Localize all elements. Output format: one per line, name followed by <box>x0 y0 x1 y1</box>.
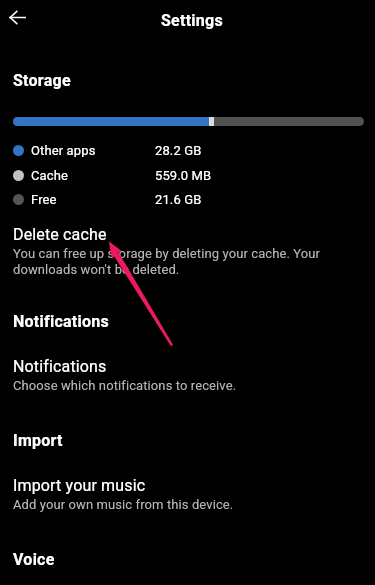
staticText: Cache <box>31 168 68 182</box>
staticText: Import <box>13 431 63 450</box>
staticText: 21.6 GB <box>155 192 202 206</box>
staticText: Choose which notifications to receive. <box>13 378 237 393</box>
staticText: Settings <box>161 11 223 30</box>
staticText: Voice <box>13 550 55 569</box>
staticText: Other apps <box>31 143 96 157</box>
staticText: Storage <box>13 71 71 90</box>
button[interactable]: Notifications <box>0 357 375 415</box>
staticText: Add your own music from this device. <box>13 497 234 512</box>
button[interactable]: Import your music <box>0 476 375 534</box>
staticText: Notifications <box>13 357 107 376</box>
button[interactable]: Delete cache <box>0 225 375 283</box>
staticText: You can free up storage by deleting your… <box>13 246 321 277</box>
staticText: 28.2 GB <box>155 143 202 157</box>
staticText: Notifications <box>13 312 109 331</box>
staticText: Import your music <box>13 476 146 495</box>
staticText: 559.0 MB <box>155 168 212 182</box>
button[interactable]: Back <box>1 1 33 33</box>
staticText: Delete cache <box>13 225 107 244</box>
staticText: Free <box>31 192 57 206</box>
